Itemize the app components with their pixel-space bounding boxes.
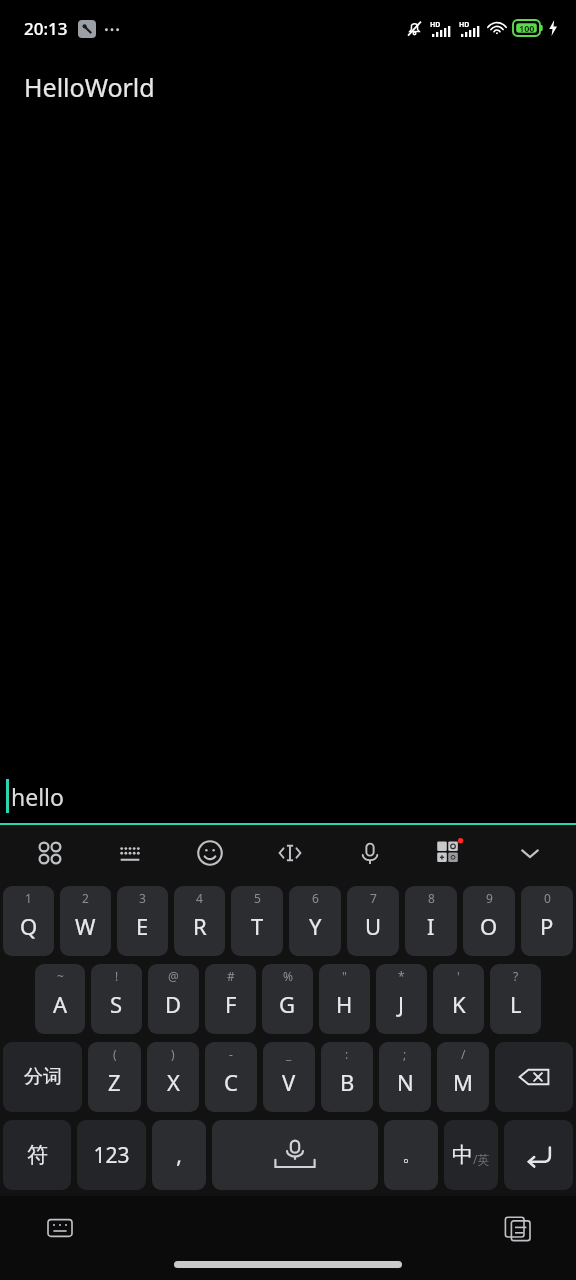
staticText: D [165, 989, 182, 1019]
staticText: Y [309, 911, 322, 941]
button[interactable]: Emoji [184, 827, 236, 879]
button[interactable]: ; [379, 1042, 431, 1112]
staticText: _ [286, 1046, 292, 1062]
staticText: 。 [402, 1144, 420, 1167]
staticText: / [461, 1046, 466, 1062]
button[interactable]: Backspace [495, 1042, 573, 1112]
staticText: P [540, 911, 554, 941]
button[interactable]: / [437, 1042, 489, 1112]
staticText: 符 [27, 1142, 48, 1168]
staticText: X [167, 1067, 180, 1097]
staticText: 5 [254, 890, 261, 906]
staticText: C [224, 1067, 238, 1097]
staticText: ; [403, 1046, 407, 1062]
staticText: 6 [312, 890, 319, 906]
button[interactable]: 123 [77, 1120, 146, 1190]
staticText: Q [20, 911, 38, 941]
button[interactable]: Switch keyboard [38, 1206, 82, 1250]
button[interactable]: ~ [35, 964, 85, 1034]
staticText: A [53, 989, 68, 1019]
staticText: B [340, 1067, 355, 1097]
staticText: HD [430, 20, 441, 30]
staticText: ) [171, 1046, 175, 1062]
staticText: 分词 [24, 1065, 62, 1089]
staticText: L [510, 989, 522, 1019]
staticText: 1 [25, 890, 32, 906]
button[interactable]: ( [88, 1042, 141, 1112]
button[interactable]: * [376, 964, 427, 1034]
button[interactable]: Hide keyboard [504, 827, 556, 879]
staticText: N [397, 1067, 414, 1097]
button[interactable]: ! [91, 964, 142, 1034]
staticText: 123 [93, 1141, 130, 1170]
staticText: R [193, 911, 207, 941]
button[interactable]: % [262, 964, 313, 1034]
button[interactable]: 8 [405, 886, 457, 956]
button[interactable]: 1 [3, 886, 54, 956]
staticText: G [279, 989, 296, 1019]
button[interactable]: Clipboard [496, 1206, 540, 1250]
staticText: 4 [196, 890, 203, 906]
button[interactable]: ) [147, 1042, 199, 1112]
button[interactable]: 4 [174, 886, 225, 956]
staticText: ? [513, 968, 519, 984]
staticText: @ [168, 968, 179, 984]
staticText: F [225, 989, 237, 1019]
button[interactable]: 2 [60, 886, 111, 956]
staticText: E [136, 911, 149, 941]
staticText: 2 [82, 890, 89, 906]
button[interactable]: @ [148, 964, 199, 1034]
button[interactable]: ' [433, 964, 484, 1034]
staticText: 3 [139, 890, 146, 906]
button[interactable]: 5 [231, 886, 283, 956]
staticText: 8 [428, 890, 435, 906]
button[interactable]: Keyboard layout [104, 827, 156, 879]
button[interactable]: 7 [347, 886, 399, 956]
staticText: U [365, 911, 382, 941]
staticText: Z [108, 1067, 121, 1097]
staticText: ( [113, 1046, 117, 1062]
staticText: HD [459, 20, 470, 30]
staticText: 100 [519, 22, 535, 34]
button[interactable]: ? [490, 964, 541, 1034]
staticText: 20:13 [24, 17, 68, 40]
button[interactable]: Menu [24, 827, 76, 879]
staticText: H [336, 989, 353, 1019]
button[interactable]: - [205, 1042, 257, 1112]
staticText: ~ [57, 968, 64, 984]
staticText: % [283, 968, 293, 984]
staticText: ' [457, 968, 460, 984]
staticText: T [251, 911, 264, 941]
button[interactable]: , [152, 1120, 206, 1190]
staticText: # [227, 968, 235, 984]
staticText: : [345, 1046, 349, 1062]
button[interactable]: 。 [384, 1120, 438, 1190]
button[interactable]: Move cursor [264, 827, 316, 879]
staticText: J [398, 989, 405, 1019]
staticText: 0 [544, 890, 551, 906]
staticText: 7 [370, 890, 377, 906]
button[interactable]: 符 [3, 1120, 71, 1190]
button[interactable]: 9 [463, 886, 515, 956]
staticText: /英 [473, 1151, 490, 1167]
button[interactable]: Tools [424, 827, 476, 879]
button[interactable]: 0 [521, 886, 573, 956]
button[interactable]: Voice input [344, 827, 396, 879]
staticText: - [229, 1046, 233, 1062]
button[interactable]: Enter [504, 1120, 573, 1190]
staticText: M [453, 1067, 473, 1097]
button[interactable]: 3 [117, 886, 168, 956]
button[interactable]: _ [263, 1042, 315, 1112]
staticText: 中 [452, 1142, 473, 1168]
button[interactable]: 中 [444, 1120, 498, 1190]
staticText: W [75, 911, 96, 941]
button[interactable]: # [205, 964, 256, 1034]
button[interactable]: : [321, 1042, 373, 1112]
staticText: HelloWorld [24, 70, 155, 104]
staticText: K [452, 989, 466, 1019]
button[interactable]: 分词 [3, 1042, 82, 1112]
button[interactable]: " [319, 964, 370, 1034]
staticText: hello [11, 781, 64, 812]
button[interactable]: Space [212, 1120, 378, 1190]
button[interactable]: 6 [289, 886, 341, 956]
